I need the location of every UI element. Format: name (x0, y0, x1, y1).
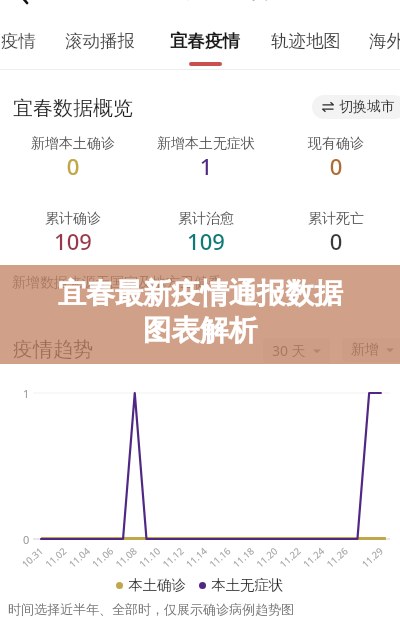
button[interactable]: 国内疫情 (0, 24, 47, 69)
staticText: 新增数据来源于国家及地方卫健委 (12, 274, 222, 292)
staticText: 宜春疫情 (159, 30, 251, 52)
button[interactable]: 本土无症状 (199, 574, 284, 596)
button[interactable]: 新增本土无症状 (141, 135, 271, 183)
button[interactable]: 宜春疫情 (159, 24, 251, 69)
button[interactable]: 本土确诊 (116, 574, 186, 596)
staticText: 新增 (351, 341, 379, 359)
button[interactable]: 累计治愈 (141, 210, 271, 258)
staticText: 轨迹地图 (260, 30, 352, 52)
other: Back (13, 0, 31, 3)
staticText: 现有确诊 (271, 135, 400, 153)
staticText: 本土确诊 (128, 576, 186, 594)
staticText: 滚动播报 (54, 30, 146, 52)
staticText: 0 (271, 226, 400, 256)
staticText: 国内疫情 (0, 30, 47, 52)
staticText: 宜春最新疫情通报数据图表解析 (50, 276, 350, 349)
staticText: 时间选择近半年、全部时，仅展示确诊病例趋势图 (8, 601, 294, 617)
staticText: 切换城市 (339, 98, 395, 116)
staticText: 30 天 (272, 341, 306, 360)
button[interactable]: 滚动播报 (54, 24, 146, 69)
staticText: 1 (141, 151, 271, 181)
staticText: 宜春数据概览 (13, 96, 133, 121)
button[interactable]: 30 天 (263, 338, 330, 363)
button[interactable]: 新增本土确诊 (8, 135, 138, 183)
button[interactable]: 海外疫情 (358, 24, 400, 69)
staticText: 累计治愈 (141, 210, 271, 228)
staticText: 累计确诊 (8, 210, 138, 228)
staticText: 新增本土无症状 (141, 135, 271, 153)
staticText: 0 (271, 151, 400, 181)
staticText: 0 (8, 151, 138, 181)
staticText: 疫情趋势 (13, 337, 93, 362)
staticText: 海外疫情 (358, 30, 400, 52)
staticText: 累计死亡 (271, 210, 400, 228)
staticText: 本土无症状 (211, 576, 284, 594)
staticText: 109 (141, 226, 271, 256)
button[interactable]: 切换城市 (312, 95, 400, 119)
button[interactable]: 累计死亡 (271, 210, 400, 258)
staticText: 新型冠状病毒肺炎 (132, 0, 268, 3)
button[interactable]: 累计确诊 (8, 210, 138, 258)
staticText: 109 (8, 226, 138, 256)
button[interactable]: 新增 (342, 338, 400, 362)
button[interactable]: 轨迹地图 (260, 24, 352, 69)
staticText: 新增本土确诊 (8, 135, 138, 153)
button[interactable]: 现有确诊 (271, 135, 400, 183)
